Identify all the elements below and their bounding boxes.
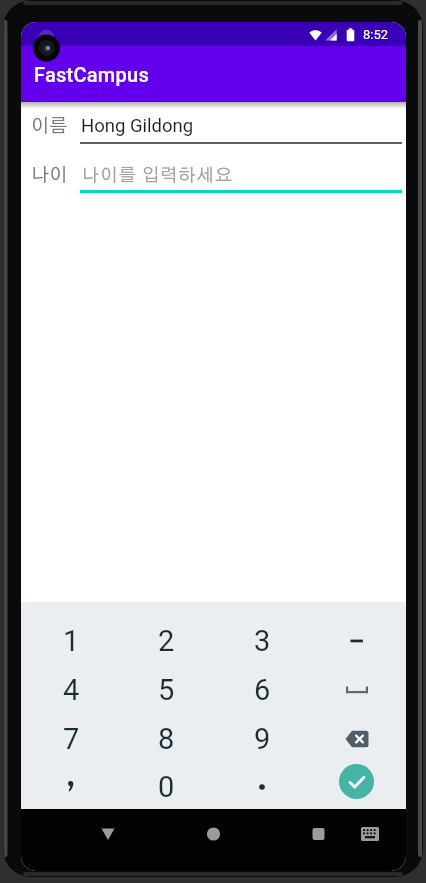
button[interactable]: 4 bbox=[27, 666, 115, 714]
staticText: 9 bbox=[254, 722, 271, 756]
button[interactable]: 3 bbox=[218, 617, 306, 665]
button[interactable]: Hong Gildong bbox=[80, 114, 402, 138]
button[interactable] bbox=[313, 666, 401, 714]
button[interactable]: 2 bbox=[122, 617, 210, 665]
button[interactable] bbox=[218, 763, 306, 811]
button[interactable]: 8 bbox=[122, 715, 210, 763]
staticText: 8:52 bbox=[363, 27, 389, 42]
button[interactable]: 0 bbox=[122, 763, 210, 811]
staticText: 8 bbox=[158, 722, 175, 756]
staticText: 5 bbox=[158, 673, 175, 707]
staticText: 0 bbox=[158, 770, 175, 804]
staticText: FastCampus bbox=[34, 63, 149, 86]
button[interactable] bbox=[298, 814, 338, 854]
staticText: 6 bbox=[254, 673, 271, 707]
button[interactable] bbox=[313, 617, 401, 665]
staticText: 1 bbox=[63, 624, 80, 658]
staticText: 나이를 입력하세요 bbox=[82, 167, 233, 185]
button[interactable]: 7 bbox=[27, 715, 115, 763]
button[interactable]: 6 bbox=[218, 666, 306, 714]
button[interactable] bbox=[350, 814, 390, 854]
staticText: 4 bbox=[63, 673, 80, 707]
button[interactable]: 1 bbox=[27, 617, 115, 665]
button[interactable]: 9 bbox=[218, 715, 306, 763]
staticText: 3 bbox=[254, 624, 271, 658]
button[interactable]: 5 bbox=[122, 666, 210, 714]
button[interactable] bbox=[88, 814, 128, 854]
button[interactable] bbox=[27, 763, 115, 811]
staticText: 이름 bbox=[31, 117, 68, 136]
button[interactable] bbox=[193, 814, 233, 854]
staticText: 2 bbox=[158, 624, 175, 658]
button[interactable] bbox=[339, 764, 374, 799]
staticText: Hong Gildong bbox=[81, 115, 194, 137]
staticText: 나이 bbox=[31, 166, 68, 185]
button[interactable] bbox=[313, 715, 401, 763]
staticText: 7 bbox=[63, 722, 80, 756]
button[interactable]: 나이를 입력하세요 bbox=[80, 164, 402, 188]
